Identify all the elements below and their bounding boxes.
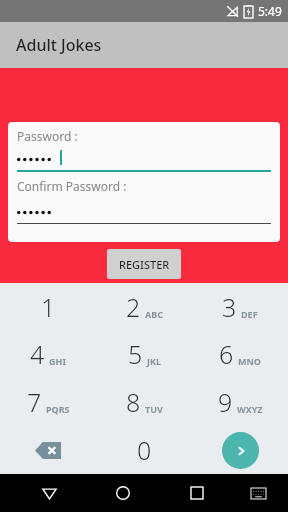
staticText: 9: [218, 385, 233, 419]
staticText: 5:49: [258, 3, 282, 19]
staticText: PQRS: [46, 403, 70, 415]
staticText: 5: [128, 337, 143, 371]
staticText: TUV: [145, 403, 163, 415]
button[interactable]: 9: [192, 378, 288, 426]
button[interactable]: 8: [96, 378, 192, 426]
button[interactable]: 4: [0, 330, 96, 378]
staticText: 3: [222, 290, 237, 324]
staticText: 6: [219, 337, 234, 371]
button[interactable]: REGISTER: [107, 249, 181, 279]
button[interactable]: Switch keyboard: [241, 476, 275, 510]
button[interactable]: Recent apps: [175, 474, 219, 512]
button[interactable]: Back: [27, 474, 71, 512]
staticText: JKL: [147, 355, 161, 367]
staticText: 1: [41, 290, 56, 324]
staticText: Password :: [17, 128, 78, 144]
staticText: ABC: [145, 308, 163, 320]
staticText: WXYZ: [237, 403, 263, 415]
button[interactable]: 2: [96, 283, 192, 330]
button[interactable]: 0: [96, 426, 192, 474]
staticText: 0: [137, 433, 152, 467]
staticText: 4: [30, 337, 45, 371]
button[interactable]: Next: [192, 426, 288, 474]
staticText: Confirm Password :: [17, 178, 127, 194]
staticText: 8: [126, 385, 141, 419]
button[interactable]: 7: [0, 378, 96, 426]
button[interactable]: 5: [96, 330, 192, 378]
staticText: 7: [27, 385, 42, 419]
button[interactable]: Home: [101, 474, 145, 512]
button[interactable]: Password :: [8, 122, 280, 242]
staticText: DEF: [241, 308, 258, 320]
button[interactable]: 3: [192, 283, 288, 330]
button[interactable]: Backspace: [0, 426, 96, 474]
button[interactable]: 1: [0, 283, 96, 330]
staticText: REGISTER: [119, 257, 170, 272]
staticText: MNO: [238, 355, 261, 367]
staticText: GHI: [49, 355, 66, 367]
staticText: Adult Jokes: [16, 34, 102, 56]
staticText: 2: [126, 290, 141, 324]
button[interactable]: 6: [192, 330, 288, 378]
